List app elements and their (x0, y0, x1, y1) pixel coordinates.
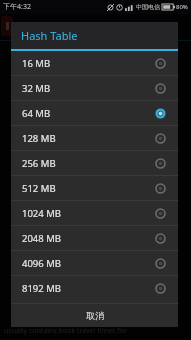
staticText: usually contains book travel times for (4, 326, 127, 336)
other: App icon (1, 16, 13, 36)
staticText: 下午4:32 (3, 2, 31, 12)
button[interactable]: 32 MB (11, 76, 178, 100)
button[interactable]: 2048 MB (11, 226, 178, 250)
staticText: 256 MB (22, 157, 155, 170)
button[interactable]: 16 MB (11, 51, 178, 75)
staticText: 2048 MB (22, 232, 155, 245)
staticText: 512 MB (22, 182, 155, 195)
button[interactable]: 4096 MB (11, 251, 178, 275)
staticText: 128 MB (22, 132, 155, 145)
staticText: 64 MB (22, 107, 155, 120)
staticText: Hash Table (21, 28, 78, 43)
staticText: 32 MB (22, 82, 155, 95)
staticText: 1024 MB (22, 207, 155, 220)
button[interactable]: 256 MB (11, 151, 178, 175)
staticText: 中国电信 (136, 3, 160, 11)
staticText: 4096 MB (22, 257, 155, 270)
staticText: 80% (176, 3, 188, 11)
button[interactable]: 64 MB (11, 101, 178, 125)
button[interactable]: 1024 MB (11, 201, 178, 225)
staticText: 16 MB (22, 57, 155, 70)
button[interactable]: 取消 (11, 304, 178, 327)
button[interactable]: 512 MB (11, 176, 178, 200)
staticText: 8192 MB (22, 282, 155, 295)
button[interactable]: 128 MB (11, 126, 178, 150)
staticText: 取消 (86, 310, 104, 321)
button[interactable]: 8192 MB (11, 276, 178, 300)
